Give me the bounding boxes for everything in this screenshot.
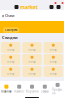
staticText: market (19, 3, 37, 11)
staticText: Товар (7, 72, 15, 75)
button[interactable]: Товар (1, 66, 20, 77)
button[interactable]: Товар (1, 54, 20, 65)
button[interactable]: Товар (44, 66, 63, 77)
staticText: Товар (49, 60, 57, 63)
button[interactable]: Смотреть (3, 27, 19, 33)
button[interactable]: Каталог (13, 83, 26, 95)
button[interactable]: Корзина (26, 83, 38, 95)
staticText: Товар (49, 48, 57, 51)
staticText: Товар (28, 72, 36, 75)
button[interactable]: Товар (44, 54, 63, 65)
button[interactable]: Cart (56, 4, 61, 9)
staticText: Товар (28, 48, 36, 51)
staticText: Главная (1, 90, 12, 93)
staticText: Очки (5, 13, 14, 18)
button[interactable]: Notifications (49, 4, 54, 9)
button[interactable]: Товар (22, 66, 42, 77)
button[interactable]: Товар (44, 42, 63, 53)
staticText: Профиль (52, 88, 63, 95)
staticText: ‹ (2, 12, 4, 19)
staticText: Каталог (14, 90, 24, 93)
button[interactable]: Товар (22, 42, 42, 53)
button[interactable]: Товар (1, 42, 20, 53)
button[interactable]: Товар (22, 54, 42, 65)
staticText: Смотреть (5, 28, 17, 32)
button[interactable]: Заказы (38, 83, 51, 95)
staticText: Товар (7, 48, 15, 51)
button[interactable]: ‹ (2, 12, 14, 19)
staticText: Корзина (26, 90, 38, 93)
staticText: Скидки (2, 35, 18, 40)
staticText: Заказы (41, 90, 49, 93)
button[interactable]: Профиль (51, 81, 64, 97)
staticText: Товар (28, 60, 36, 63)
staticText: Товар (7, 60, 15, 63)
button[interactable]: Главная (0, 83, 13, 95)
staticText: Товар (49, 72, 57, 75)
